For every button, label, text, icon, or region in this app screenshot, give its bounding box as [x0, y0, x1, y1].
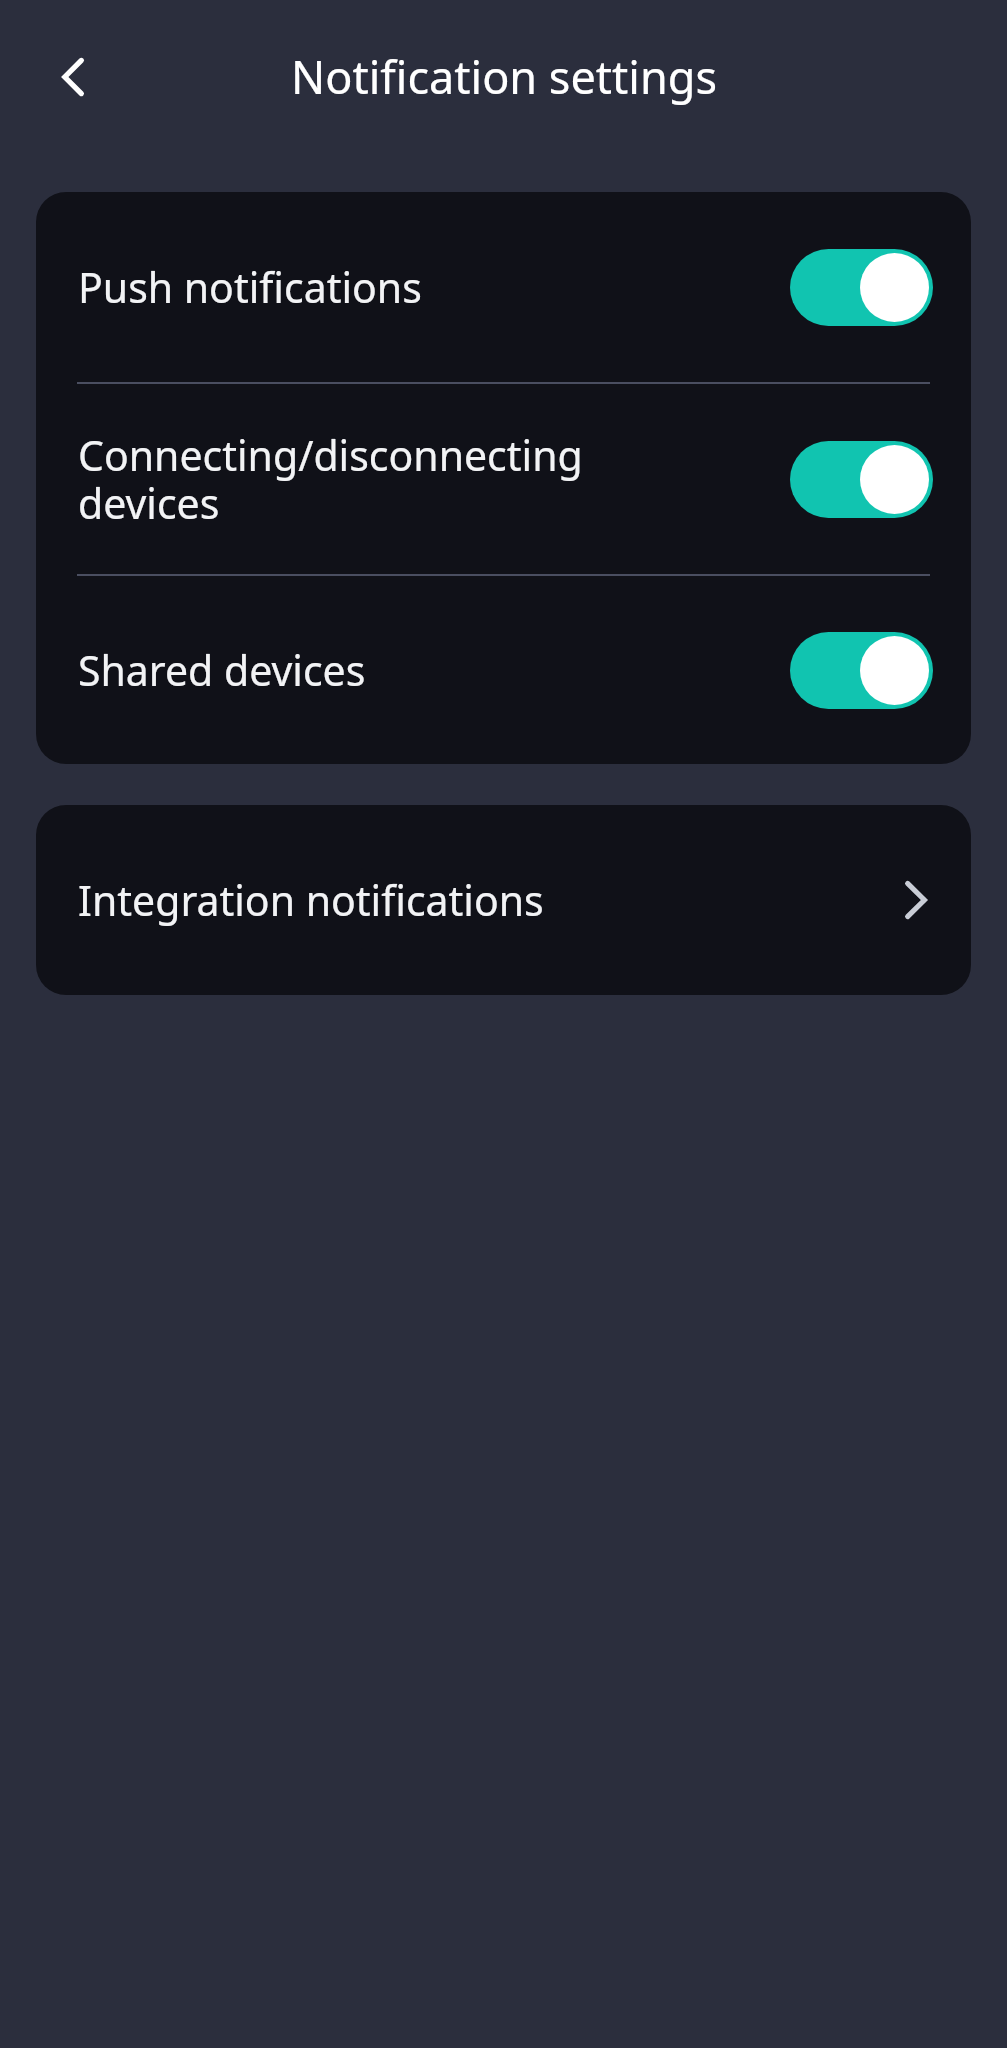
- staticText: Integration notifications: [78, 872, 901, 928]
- staticText: Connecting/disconnecting devices: [78, 427, 766, 531]
- button[interactable]: Integration notifications: [36, 805, 971, 995]
- button[interactable]: [790, 249, 933, 326]
- button[interactable]: Connecting/disconnecting devices: [36, 384, 971, 574]
- button[interactable]: [790, 632, 933, 709]
- staticText: Notification settings: [291, 46, 717, 107]
- staticText: Shared devices: [78, 642, 766, 698]
- staticText: Push notifications: [78, 259, 766, 315]
- button[interactable]: Push notifications: [36, 192, 971, 382]
- button[interactable]: [790, 441, 933, 518]
- button[interactable]: Back: [28, 31, 120, 123]
- button[interactable]: Shared devices: [36, 576, 971, 764]
